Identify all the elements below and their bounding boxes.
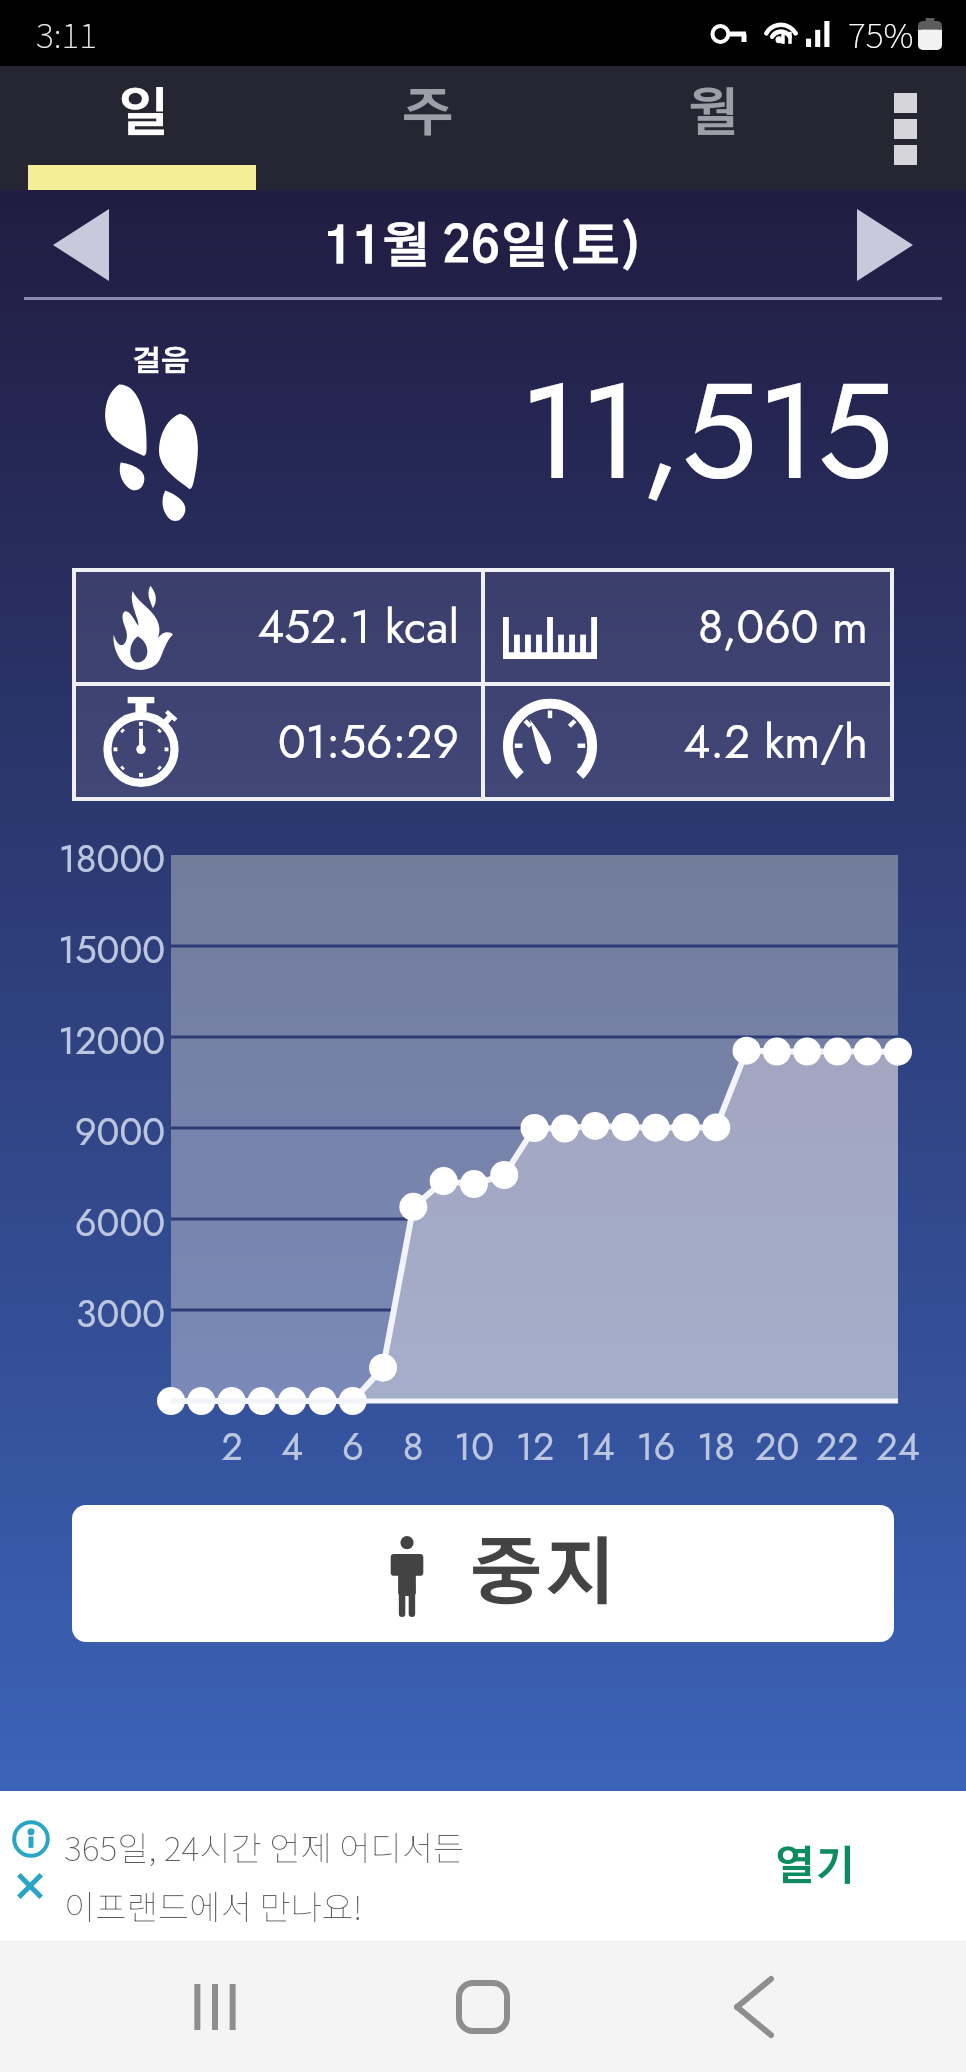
- staticText: 열기: [774, 1847, 856, 1888]
- staticText: 일: [117, 90, 169, 142]
- staticText: 18000: [0, 831, 165, 886]
- staticText: 01:56:29: [206, 709, 459, 775]
- staticText: 2: [202, 1419, 262, 1474]
- staticText: 12000: [0, 1013, 165, 1068]
- staticText: 22: [807, 1419, 867, 1474]
- button[interactable]: 일: [0, 66, 285, 190]
- button[interactable]: 01:56:29: [76, 686, 481, 797]
- staticText: 월: [687, 90, 739, 142]
- staticText: 12: [505, 1419, 565, 1474]
- button[interactable]: 주: [285, 66, 570, 190]
- button[interactable]: Close ad: [10, 1866, 50, 1906]
- button[interactable]: Next day: [830, 202, 940, 288]
- staticText: 중지: [470, 1540, 616, 1613]
- button[interactable]: 8,060 m: [485, 572, 890, 682]
- button[interactable]: Home: [429, 1941, 537, 2072]
- staticText: 24: [868, 1419, 928, 1474]
- staticText: 8,060 m: [615, 594, 868, 660]
- staticText: 4: [262, 1419, 322, 1474]
- staticText: 3:11: [36, 9, 97, 58]
- button[interactable]: 열기: [774, 1847, 856, 1888]
- staticText: 16: [626, 1419, 686, 1474]
- staticText: 3000: [0, 1286, 165, 1341]
- staticText: 365일, 24시간 언제 어디서든: [64, 1822, 465, 1871]
- staticText: 6: [323, 1419, 383, 1474]
- button[interactable]: 4.2 km/h: [485, 686, 890, 797]
- button[interactable]: 452.1 kcal: [76, 572, 481, 682]
- button[interactable]: 중지: [72, 1505, 894, 1642]
- staticText: 10: [444, 1419, 504, 1474]
- staticText: 11월 26일(토): [324, 224, 643, 273]
- button[interactable]: Recent apps: [161, 1941, 269, 2072]
- staticText: 걸음: [132, 348, 190, 377]
- staticText: 6000: [0, 1195, 165, 1250]
- button[interactable]: More options: [855, 66, 966, 190]
- staticText: 20: [747, 1419, 807, 1474]
- staticText: 15000: [0, 922, 165, 977]
- button[interactable]: Back: [699, 1941, 807, 2072]
- staticText: 11,515: [520, 335, 894, 529]
- staticText: 18: [686, 1419, 746, 1474]
- staticText: 9000: [0, 1104, 165, 1159]
- staticText: 이프랜드에서 만나요!: [64, 1881, 363, 1930]
- staticText: 75%: [848, 9, 914, 58]
- button[interactable]: Previous day: [26, 202, 136, 288]
- staticText: 14: [565, 1419, 625, 1474]
- button[interactable]: 월: [570, 66, 855, 190]
- staticText: 주: [402, 90, 454, 142]
- staticText: 452.1 kcal: [206, 594, 459, 660]
- staticText: 8: [383, 1419, 443, 1474]
- staticText: 4.2 km/h: [615, 709, 868, 775]
